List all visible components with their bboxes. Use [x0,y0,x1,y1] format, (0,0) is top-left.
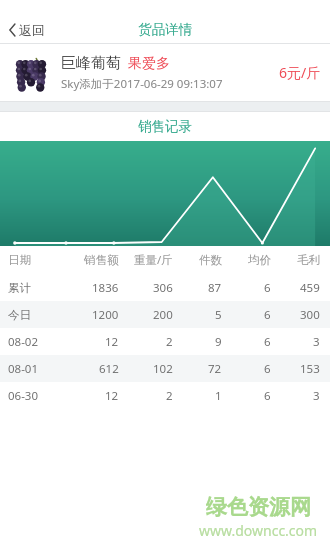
button[interactable]: 返回 [0,18,55,42]
staticText: 72 [208,361,222,377]
staticText: 货品详情 [138,21,192,38]
staticText: 459 [300,280,320,296]
other: 葡萄图片 [9,51,53,95]
staticText: 08-01 [8,361,39,377]
staticText: 3 [313,334,320,350]
button[interactable]: 08-01 [0,355,330,382]
staticText: 件数 [199,253,222,267]
staticText: 12 [105,334,119,350]
staticText: 今日 [8,308,31,322]
staticText: 累计 [8,281,31,295]
staticText: 毛利 [297,253,320,267]
button[interactable]: 累计 [0,274,330,301]
staticText: 2 [166,388,173,404]
staticText: 200 [153,307,173,323]
staticText: 1 [215,388,222,404]
staticText: 6 [264,361,271,377]
staticText: 2 [166,334,173,350]
staticText: 6 [264,280,271,296]
staticText: 日期 [8,253,31,267]
staticText: 果爱多 [128,55,170,73]
staticText: 6 [264,307,271,323]
staticText: 9 [215,334,222,350]
staticText: 06-30 [8,388,39,404]
staticText: 重量/斤 [134,252,173,268]
staticText: 6元/斤 [279,63,321,82]
staticText: 08-02 [8,334,39,350]
staticText: Sky添加于2017-06-29 09:13:07 [61,76,223,92]
button[interactable]: 06-30 [0,382,330,409]
staticText: 153 [300,361,320,377]
button[interactable]: 今日 [0,301,330,328]
staticText: www.downcc.com [199,521,318,540]
button[interactable]: 08-02 [0,328,330,355]
staticText: 销售额 [84,253,119,267]
staticText: 102 [153,361,173,377]
staticText: 306 [153,280,173,296]
staticText: 87 [208,280,222,296]
staticText: 返回 [19,22,45,38]
staticText: 绿色资源网 [206,494,311,520]
staticText: 300 [300,307,320,323]
staticText: 612 [99,361,119,377]
staticText: 1200 [92,307,119,323]
staticText: 1836 [92,280,119,296]
staticText: 5 [215,307,222,323]
staticText: 6 [264,334,271,350]
button[interactable]: 葡萄图片 [0,44,330,101]
staticText: 6 [264,388,271,404]
staticText: 均价 [248,253,271,267]
staticText: 巨峰葡萄 [61,54,121,73]
staticText: 12 [105,388,119,404]
staticText: 3 [313,388,320,404]
staticText: 销售记录 [138,118,192,135]
